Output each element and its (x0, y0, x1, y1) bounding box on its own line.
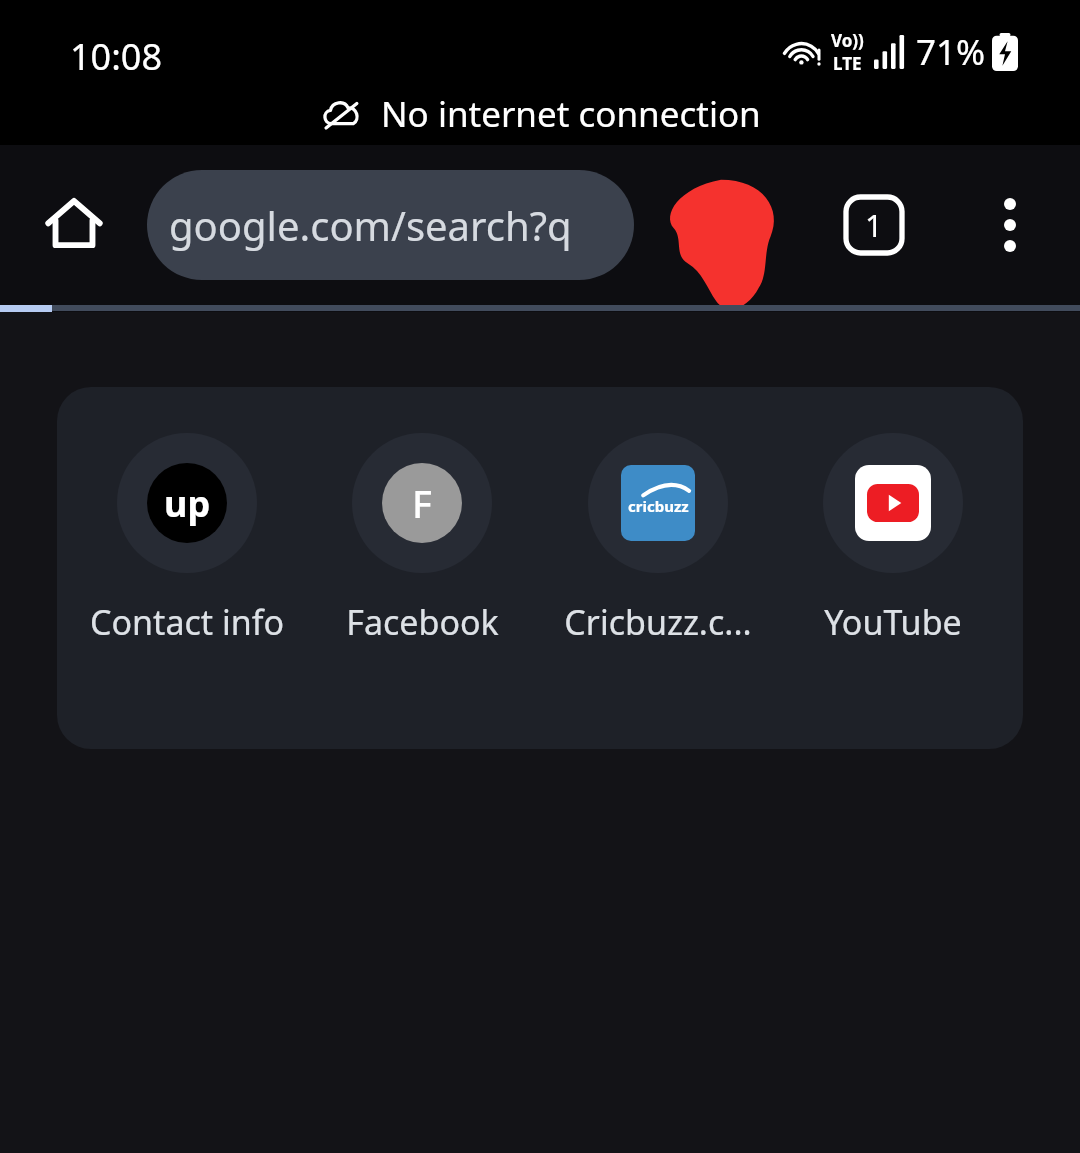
staticText: F (412, 477, 433, 529)
staticText: No internet connection (381, 90, 761, 138)
staticText: cricbuzz (628, 496, 689, 516)
button[interactable]: cricbuzz (552, 429, 764, 649)
staticText: 71% (916, 28, 986, 76)
staticText: Vo)) (831, 29, 864, 52)
button[interactable]: up (81, 429, 293, 649)
staticText: google.com/search?q (169, 198, 572, 252)
staticText: up (164, 479, 211, 528)
staticText: YouTube (824, 599, 962, 645)
staticText: Facebook (346, 599, 499, 645)
button[interactable]: YouTube (787, 429, 999, 649)
staticText: 1 (865, 204, 883, 246)
staticText: Cricbuzz.c... (564, 599, 752, 645)
staticText: 10:08 (70, 32, 163, 81)
button[interactable]: F (316, 429, 528, 649)
button[interactable]: More options (964, 179, 1056, 271)
button[interactable]: Home (28, 179, 120, 271)
button[interactable]: google.com/search?q (147, 170, 634, 280)
staticText: Contact info (90, 599, 284, 645)
staticText: LTE (833, 52, 862, 75)
button[interactable]: Tabs, 1 open (828, 179, 920, 271)
